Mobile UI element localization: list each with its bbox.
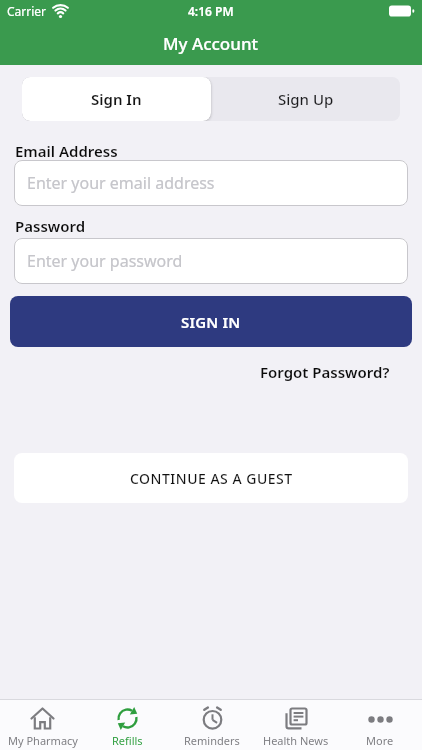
button[interactable]: Reminders — [170, 700, 254, 750]
staticText: SIGN IN — [181, 312, 241, 332]
staticText: Email Address — [15, 141, 118, 160]
staticText: Reminders — [184, 733, 240, 748]
staticText: Password — [15, 216, 86, 235]
staticText: My Pharmacy — [8, 733, 78, 748]
button[interactable]: My Pharmacy — [0, 700, 85, 750]
staticText: Forgot Password? — [260, 362, 390, 382]
staticText: My Account — [163, 32, 259, 55]
button[interactable]: SIGN IN — [10, 296, 412, 347]
button[interactable]: CONTINUE AS A GUEST — [14, 453, 408, 503]
button[interactable]: Refills — [85, 700, 170, 750]
button[interactable]: Sign In — [22, 77, 211, 121]
staticText: Enter your password — [27, 250, 183, 272]
staticText: Health News — [263, 733, 329, 748]
button[interactable]: Health News — [254, 700, 338, 750]
staticText: Refills — [112, 733, 143, 748]
staticText: More — [366, 733, 394, 748]
staticText: Sign In — [91, 89, 142, 109]
button[interactable]: More — [338, 700, 422, 750]
button[interactable]: Forgot Password? — [260, 362, 390, 382]
button[interactable]: Enter your email address — [14, 160, 408, 206]
staticText: CONTINUE AS A GUEST — [130, 469, 293, 488]
staticText: 4:16 PM — [188, 3, 234, 19]
button[interactable]: Sign Up — [211, 77, 400, 121]
staticText: Enter your email address — [27, 172, 215, 194]
staticText: Sign Up — [278, 89, 334, 109]
button[interactable]: Enter your password — [14, 238, 408, 284]
staticText: Carrier — [7, 3, 47, 19]
